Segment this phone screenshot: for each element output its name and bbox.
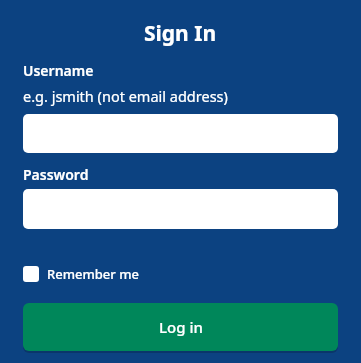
staticText: Username <box>23 61 94 80</box>
staticText: Log in <box>159 317 203 337</box>
button[interactable]: Log in <box>23 303 338 351</box>
button[interactable]: Remember me <box>23 265 139 283</box>
staticText: Sign In <box>144 19 217 48</box>
staticText: Remember me <box>47 265 139 283</box>
staticText: e.g. jsmith (not email address) <box>23 86 228 106</box>
staticText: Password <box>23 165 89 184</box>
button[interactable] <box>23 189 338 229</box>
button[interactable] <box>23 114 338 153</box>
